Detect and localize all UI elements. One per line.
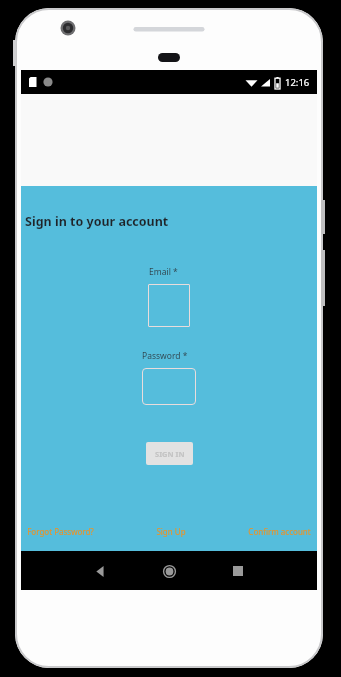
staticText: Password * <box>142 350 188 362</box>
staticText: 12:16 <box>285 76 310 89</box>
staticText: SIGN IN <box>155 449 185 459</box>
button[interactable]: Back <box>83 554 117 588</box>
staticText: Confirm account <box>248 526 311 537</box>
button[interactable]: SIGN IN <box>146 442 193 465</box>
button[interactable] <box>148 284 190 327</box>
staticText: Sign in to your account <box>25 213 169 230</box>
button[interactable]: Recent apps <box>221 554 255 588</box>
staticText: Sign Up <box>156 526 186 537</box>
staticText: Forgot Password? <box>27 526 94 537</box>
button[interactable]: Home <box>152 554 186 588</box>
staticText: Email * <box>149 266 178 278</box>
button[interactable]: Confirm account <box>246 523 313 540</box>
button[interactable]: Sign Up <box>154 523 188 540</box>
button[interactable] <box>142 368 196 405</box>
button[interactable]: Forgot Password? <box>25 523 96 540</box>
